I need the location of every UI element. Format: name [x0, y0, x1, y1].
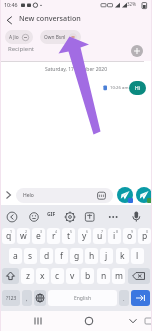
button[interactable]: English — [48, 290, 117, 306]
staticText: u — [97, 230, 103, 242]
button[interactable] — [2, 13, 16, 27]
staticText: v — [70, 270, 75, 282]
button[interactable]: g — [70, 248, 83, 264]
staticText: i — [113, 230, 116, 242]
button[interactable]: t — [62, 228, 75, 244]
staticText: 8 — [116, 229, 119, 234]
staticText: . — [123, 295, 125, 302]
staticText: b — [85, 270, 91, 282]
button[interactable]: i — [108, 228, 121, 244]
staticText: t — [67, 230, 71, 242]
staticText: 7 — [101, 229, 104, 234]
button[interactable]: z — [21, 268, 34, 284]
staticText: New conversation — [19, 13, 81, 23]
staticText: o — [127, 230, 133, 242]
staticText: English — [74, 295, 92, 302]
staticText: Recipient — [8, 45, 35, 53]
button[interactable]: n — [97, 268, 110, 284]
staticText: GIF — [47, 211, 56, 218]
staticText: 2 — [25, 229, 28, 234]
button[interactable] — [2, 268, 19, 284]
staticText: g — [74, 250, 80, 262]
button[interactable]: w — [17, 228, 30, 244]
button[interactable]: l — [131, 248, 144, 264]
staticText: 10:46 — [4, 1, 18, 8]
button[interactable] — [131, 45, 143, 57]
staticText: 5 — [70, 229, 73, 234]
button[interactable]: c — [51, 268, 64, 284]
staticText: d — [44, 250, 50, 262]
button[interactable]: h — [85, 248, 98, 264]
button[interactable]: a — [9, 248, 22, 264]
button[interactable]: q — [2, 228, 15, 244]
button[interactable]: p — [138, 228, 151, 244]
staticText: c — [55, 270, 60, 282]
button[interactable] — [125, 313, 141, 329]
staticText: y — [82, 230, 87, 242]
button[interactable]: . — [119, 290, 129, 306]
button[interactable]: ?123 — [2, 290, 20, 306]
button[interactable] — [30, 313, 46, 329]
button[interactable]: u — [93, 228, 106, 244]
button[interactable]: j — [100, 248, 113, 264]
staticText: e — [36, 230, 41, 242]
button[interactable]: y — [78, 228, 91, 244]
button[interactable] — [81, 313, 97, 329]
button[interactable]: m — [112, 268, 125, 284]
button[interactable]: Own Bsnl — [40, 30, 81, 44]
button[interactable] — [129, 209, 143, 224]
button[interactable]: o — [123, 228, 136, 244]
button[interactable]: f — [55, 248, 68, 264]
staticText: f — [60, 250, 63, 262]
staticText: s — [28, 250, 33, 262]
staticText: m — [115, 270, 123, 282]
staticText: 10:26 am — [110, 84, 129, 90]
button[interactable]: d — [40, 248, 53, 264]
button[interactable]: r — [47, 228, 60, 244]
button[interactable] — [34, 290, 46, 306]
staticText: w — [20, 230, 27, 242]
staticText: Saturday, 17 October 2020 — [0, 66, 152, 73]
button[interactable] — [45, 209, 59, 224]
button[interactable]: b — [81, 268, 94, 284]
staticText: , — [26, 295, 28, 302]
staticText: j — [105, 250, 108, 262]
staticText: 1 — [10, 229, 13, 234]
staticText: p — [142, 230, 148, 242]
staticText: ?123 — [6, 295, 17, 302]
staticText: r — [52, 230, 56, 242]
button[interactable] — [63, 209, 77, 224]
staticText: k — [120, 250, 125, 262]
button[interactable]: k — [116, 248, 129, 264]
staticText: Hi — [135, 85, 140, 92]
button[interactable] — [27, 209, 41, 224]
button[interactable] — [3, 188, 14, 202]
button[interactable]: , — [22, 290, 32, 306]
staticText: 32% — [127, 1, 136, 7]
button[interactable]: Hi — [129, 81, 146, 95]
button[interactable]: A Jio — [5, 30, 33, 44]
button[interactable] — [106, 209, 120, 224]
staticText: a — [13, 250, 18, 262]
button[interactable]: e — [32, 228, 45, 244]
staticText: z — [26, 270, 30, 282]
staticText: A Jio — [9, 34, 19, 41]
button[interactable] — [131, 290, 150, 306]
staticText: 0 — [146, 229, 149, 234]
button[interactable]: Helo — [16, 188, 113, 203]
button[interactable] — [128, 268, 150, 284]
button[interactable] — [117, 187, 133, 203]
staticText: q — [6, 230, 12, 242]
button[interactable]: x — [36, 268, 49, 284]
staticText: Helo — [23, 192, 34, 199]
button[interactable]: s — [24, 248, 37, 264]
button[interactable] — [5, 209, 19, 224]
button[interactable] — [136, 187, 152, 203]
button[interactable]: v — [66, 268, 79, 284]
staticText: 3 — [40, 229, 43, 234]
button[interactable] — [83, 209, 97, 224]
staticText: x — [40, 270, 45, 282]
staticText: 6 — [86, 229, 89, 234]
staticText: h — [89, 250, 95, 262]
staticText: l — [136, 250, 139, 262]
